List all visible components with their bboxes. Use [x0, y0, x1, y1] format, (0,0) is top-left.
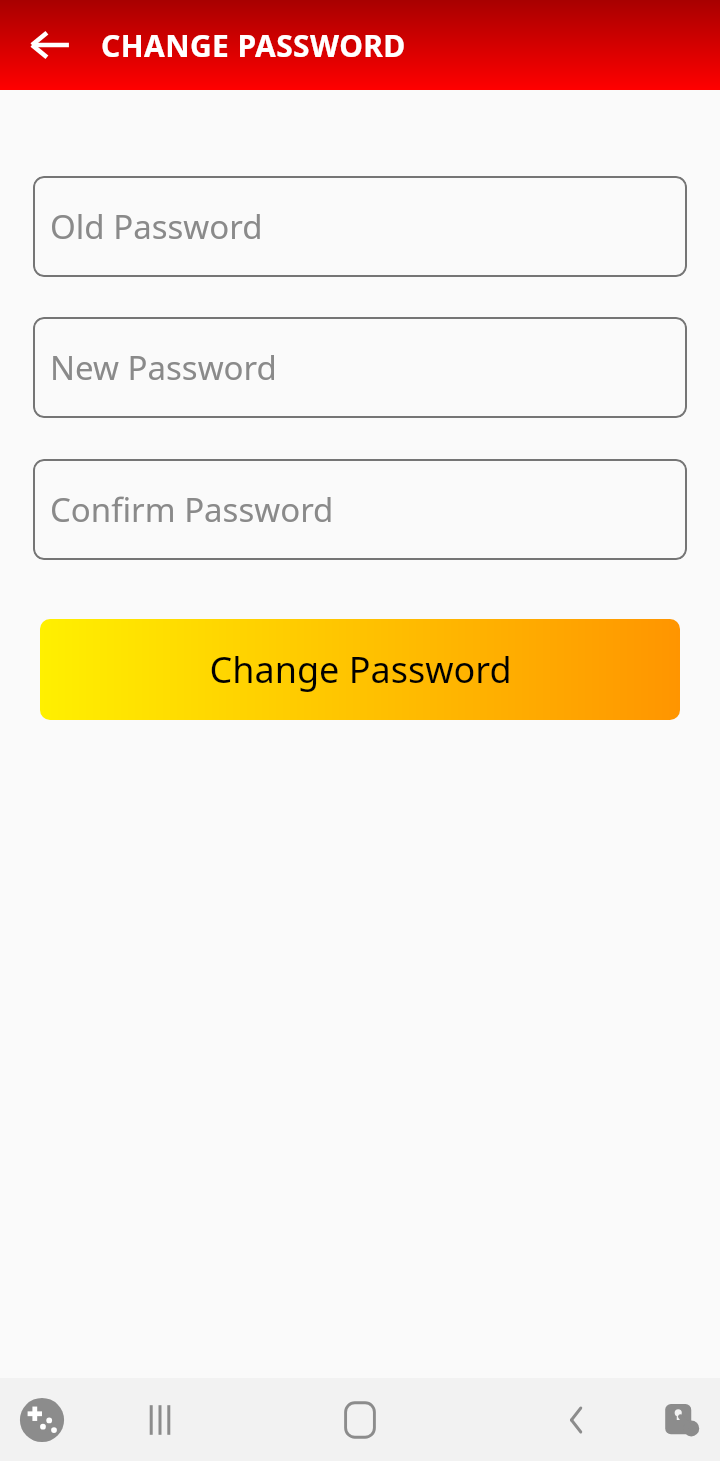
button[interactable]: Recents — [126, 1386, 194, 1454]
staticText: Old Password — [50, 204, 263, 249]
button[interactable]: Old Password — [33, 176, 687, 277]
staticText: Confirm Password — [50, 487, 334, 532]
button[interactable]: Confirm Password — [33, 459, 687, 560]
staticText: New Password — [50, 345, 277, 390]
button[interactable]: Back — [18, 13, 82, 77]
button[interactable]: New Password — [33, 317, 687, 418]
button[interactable]: Screen lock — [652, 1390, 712, 1450]
button[interactable]: Game tools — [14, 1392, 70, 1448]
button[interactable]: Home — [324, 1384, 396, 1456]
button[interactable]: Change Password — [40, 619, 680, 720]
staticText: CHANGE PASSWORD — [101, 25, 406, 66]
button[interactable]: Back — [542, 1386, 610, 1454]
staticText: Change Password — [209, 645, 512, 694]
